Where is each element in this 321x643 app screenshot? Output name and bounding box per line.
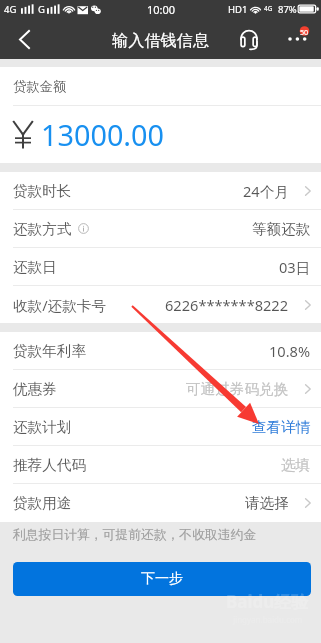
button[interactable]: 推荐人代码: [0, 446, 321, 484]
staticText: 贷款用途: [13, 494, 72, 512]
button[interactable]: 还款计划: [0, 408, 321, 446]
staticText: 贷款时长: [13, 182, 72, 200]
button[interactable]: 下一步: [13, 562, 311, 596]
staticText: 输入借钱信息: [112, 30, 210, 50]
staticText: 50: [300, 27, 309, 37]
staticText: 等额还款: [252, 220, 311, 238]
staticText: 03日: [279, 257, 311, 277]
staticText: 推荐人代码: [13, 456, 86, 474]
staticText: 下一步: [141, 570, 183, 588]
staticText: 还款计划: [13, 418, 72, 436]
staticText: 贷款年利率: [13, 342, 86, 360]
button[interactable]: 贷款年利率: [0, 332, 321, 370]
button[interactable]: 优惠券: [0, 370, 321, 408]
staticText: G: [38, 3, 45, 16]
staticText: 13000.00: [41, 115, 165, 154]
staticText: 还款方式: [13, 220, 72, 238]
staticText: 收款/还款卡号: [13, 295, 106, 315]
staticText: 24个月: [243, 181, 289, 201]
staticText: HD1: [228, 3, 248, 16]
button[interactable]: More options: [278, 20, 321, 59]
staticText: 4G: [264, 4, 273, 13]
button[interactable]: Back: [0, 20, 44, 59]
staticText: 10.8%: [269, 341, 311, 361]
staticText: 利息按日计算，可提前还款，不收取违约金: [13, 527, 257, 543]
staticText: 查看详情: [252, 418, 311, 436]
staticText: 可通过券码兑换: [186, 380, 289, 398]
staticText: 贷款金额: [13, 78, 67, 95]
staticText: 还款日: [13, 258, 57, 276]
staticText: 4G: [4, 3, 17, 16]
staticText: 87%: [278, 3, 297, 16]
button[interactable]: 还款方式: [0, 210, 321, 248]
staticText: 6226*******8222: [165, 295, 289, 315]
button[interactable]: 贷款用途: [0, 484, 321, 522]
button[interactable]: 贷款时长: [0, 172, 321, 210]
staticText: 请选择: [245, 494, 289, 512]
button[interactable]: 收款/还款卡号: [0, 286, 321, 323]
staticText: Baidu经验: [226, 590, 309, 613]
staticText: 选填: [281, 456, 311, 474]
button[interactable]: 还款日: [0, 248, 321, 286]
staticText: 10:00: [147, 2, 176, 17]
staticText: 优惠券: [13, 380, 57, 398]
button[interactable]: Customer service: [232, 20, 265, 59]
